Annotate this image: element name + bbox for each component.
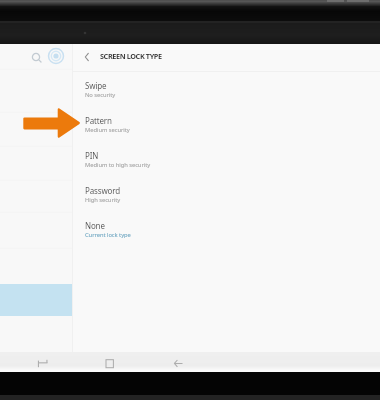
- button[interactable]: Account: [45, 45, 67, 67]
- button[interactable]: Navigate up: [78, 48, 96, 66]
- staticText: Pattern: [85, 115, 112, 126]
- staticText: Password: [85, 185, 120, 196]
- button[interactable]: Recent apps: [35, 355, 51, 371]
- staticText: None: [85, 220, 105, 231]
- button[interactable]: Search: [27, 48, 45, 66]
- staticText: No security: [85, 91, 116, 99]
- staticText: Current lock type: [85, 231, 131, 239]
- button[interactable]: None: [0, 220, 380, 255]
- staticText: High security: [85, 196, 121, 204]
- button[interactable]: Password: [0, 185, 380, 220]
- staticText: Medium security: [85, 126, 130, 134]
- staticText: Medium to high security: [85, 161, 151, 169]
- button[interactable]: PIN: [0, 150, 380, 185]
- staticText: Swipe: [85, 80, 107, 91]
- button[interactable]: Pattern: [0, 115, 380, 150]
- staticText: SCREEN LOCK TYPE: [100, 51, 162, 61]
- button[interactable]: Home: [102, 355, 118, 371]
- button[interactable]: Swipe: [0, 80, 380, 115]
- button[interactable]: Back: [171, 355, 187, 371]
- staticText: PIN: [85, 150, 99, 161]
